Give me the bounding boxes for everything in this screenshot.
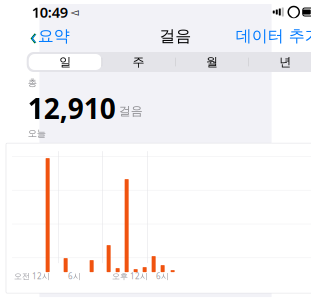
staticText: 12,910 bbox=[28, 89, 116, 127]
button[interactable]: 주 bbox=[102, 54, 175, 70]
staticText: 주 bbox=[133, 55, 145, 69]
button[interactable]: 일 bbox=[29, 54, 102, 70]
staticText: 걸음 bbox=[159, 26, 191, 46]
staticText: 요약 bbox=[38, 26, 70, 46]
staticText: 오전 12시 bbox=[14, 271, 50, 281]
staticText: 월 bbox=[206, 55, 218, 69]
staticText: ‹ bbox=[30, 21, 37, 51]
staticText: 총 bbox=[28, 77, 37, 88]
button[interactable]: ‹ bbox=[24, 18, 76, 54]
button[interactable]: 월 bbox=[175, 54, 248, 70]
staticText: 일 bbox=[59, 55, 71, 69]
staticText: ◅ bbox=[68, 6, 79, 18]
staticText: 데이터 추가 bbox=[236, 26, 311, 46]
staticText: 걸음 bbox=[119, 104, 143, 118]
staticText: 6시 bbox=[156, 271, 169, 281]
button[interactable]: 데이터 추가 bbox=[230, 23, 311, 49]
staticText: 오후 12시 bbox=[112, 271, 148, 281]
button[interactable]: 년 bbox=[249, 54, 311, 70]
staticText: 6시 bbox=[68, 271, 81, 281]
staticText: 오늘 bbox=[28, 128, 46, 139]
staticText: 년 bbox=[279, 55, 291, 69]
staticText: 10:49 bbox=[32, 2, 68, 22]
